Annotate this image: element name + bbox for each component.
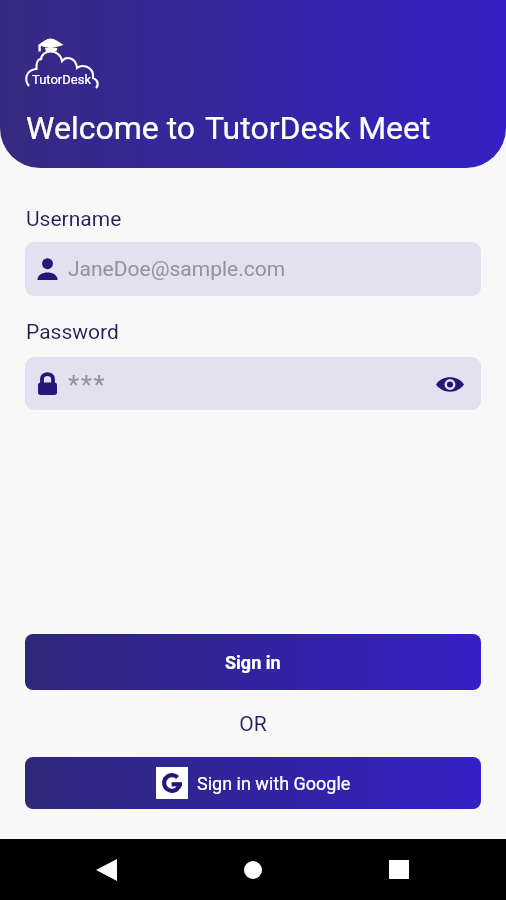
staticText: Sign in [225, 652, 281, 673]
button[interactable]: Home [205, 839, 301, 900]
button[interactable]: Show password [426, 360, 474, 408]
staticText: *** [68, 370, 107, 400]
staticText: Welcome to [26, 109, 196, 147]
staticText: TutorDesk Meet [205, 109, 431, 147]
staticText: Username [26, 207, 122, 232]
button[interactable]: Sign in [25, 634, 481, 690]
button[interactable]: Sign in with Google [25, 757, 481, 809]
staticText: TutorDesk [32, 72, 91, 87]
staticText: Password [26, 320, 119, 345]
button[interactable]: Recent apps [351, 839, 447, 900]
staticText: Sign in with Google [197, 773, 351, 794]
button[interactable]: JaneDoe@sample.com [25, 242, 481, 296]
button[interactable]: Back [58, 839, 154, 900]
staticText: JaneDoe@sample.com [68, 257, 286, 282]
button[interactable]: *** [25, 357, 481, 410]
staticText: OR [0, 712, 506, 737]
